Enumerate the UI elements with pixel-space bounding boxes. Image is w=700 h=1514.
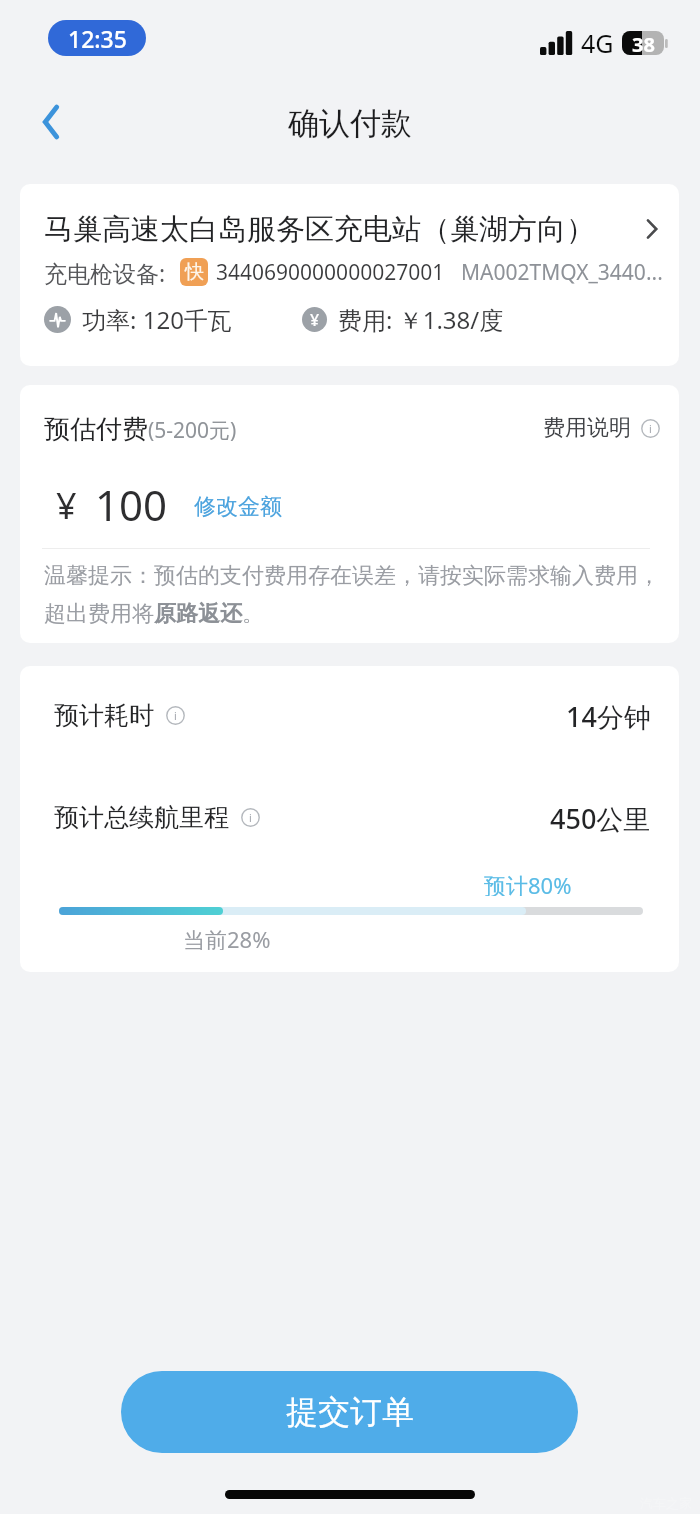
button[interactable]: About estimated charging time [166, 706, 185, 725]
staticText: 。 [242, 600, 264, 628]
staticText: 充电枪设备: [44, 257, 166, 287]
staticText: ¥ [56, 481, 77, 530]
staticText: 预计总续航里程 [54, 802, 229, 833]
staticText: 38 [632, 31, 655, 55]
staticText: 原路返还 [154, 600, 242, 628]
staticText: i [249, 810, 252, 825]
staticText: 超出费用将 [44, 600, 154, 628]
staticText: 费用说明 [543, 414, 631, 442]
staticText: 费用: ￥1.38/度 [338, 303, 504, 336]
staticText: 马巢高速太白岛服务区充电站（巢湖方向） [44, 211, 595, 248]
staticText: i [174, 708, 177, 723]
button[interactable]: 费用说明 [543, 414, 660, 442]
staticText: MA002TMQX_3440... [461, 258, 663, 287]
button[interactable]: 修改金额 [194, 493, 282, 521]
staticText: 100 [95, 476, 168, 533]
staticText: i [649, 421, 652, 436]
staticText: ¥ [310, 309, 320, 331]
staticText: 当前28% [183, 924, 271, 950]
staticText: 预计80% [484, 870, 572, 896]
staticText: 确认付款 [288, 104, 412, 143]
button[interactable]: 提交订单 [121, 1371, 578, 1453]
staticText: 预计耗时 [54, 700, 154, 731]
staticText: 快 [185, 260, 204, 284]
staticText: 提交订单 [286, 1392, 414, 1432]
staticText: 温馨提示：预估的支付费用存在误差，请按实际需求输入费用， [44, 562, 660, 590]
staticText: 14分钟 [566, 698, 651, 732]
staticText: 预估付费 [44, 413, 148, 446]
staticText: 450公里 [550, 800, 651, 834]
button[interactable]: About estimated total range [241, 808, 260, 827]
staticText: 3440690000000027001 [216, 258, 445, 287]
staticText: 12:35 [68, 23, 127, 54]
button[interactable]: 马巢高速太白岛服务区充电站（巢湖方向） [20, 184, 679, 366]
staticText: 功率: 120千瓦 [82, 303, 232, 336]
staticText: (5-200元) [148, 416, 237, 445]
button[interactable]: Station details [634, 212, 668, 246]
button[interactable]: Back [25, 95, 79, 149]
staticText: 4G [581, 26, 614, 60]
staticText: 修改金额 [194, 493, 282, 521]
